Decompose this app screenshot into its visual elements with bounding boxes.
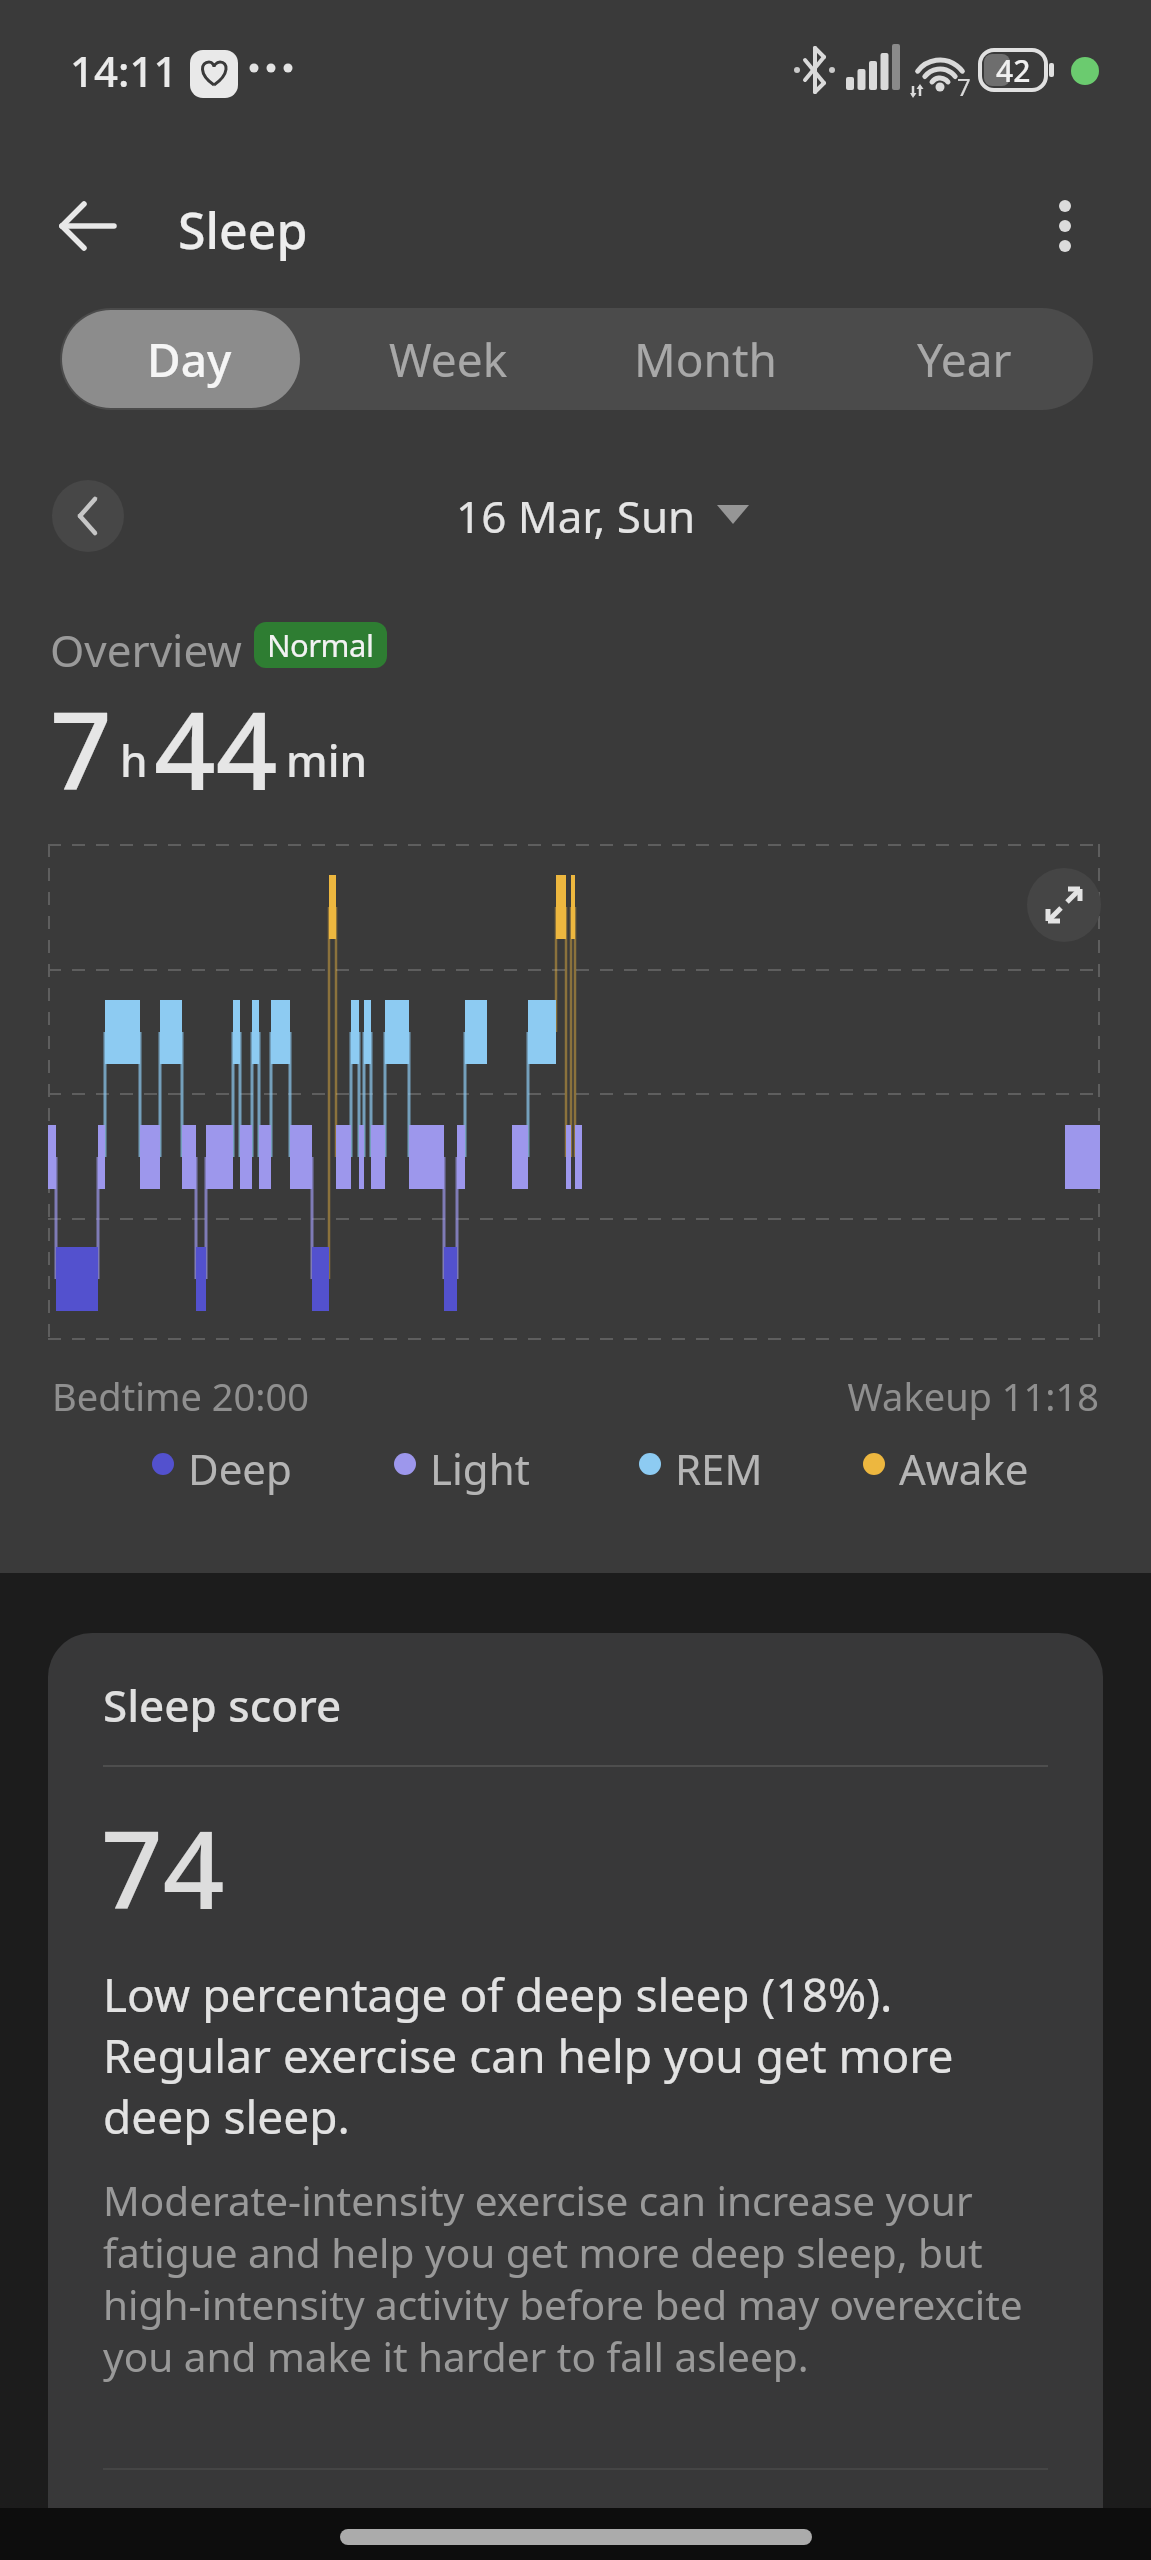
staticText: Year xyxy=(917,328,1012,391)
staticText: 42 xyxy=(996,50,1031,91)
button[interactable]: Week xyxy=(319,308,577,410)
staticText: Week xyxy=(389,328,508,391)
staticText: min xyxy=(286,730,368,790)
staticText: Overview xyxy=(50,620,242,680)
button[interactable]: 16 Mar, Sun xyxy=(0,486,1151,546)
staticText: Month xyxy=(634,328,778,391)
staticText: 44 xyxy=(154,675,278,800)
staticText: Light xyxy=(430,1440,530,1497)
staticText: 7 xyxy=(50,675,112,800)
staticText: Day xyxy=(147,328,232,391)
staticText: h xyxy=(120,730,148,790)
button[interactable]: Month xyxy=(577,308,835,410)
staticText: Low percentage of deep sleep (18%). Regu… xyxy=(103,1963,1103,2147)
staticText: Wakeup 11:18 xyxy=(0,1370,1099,1422)
button[interactable] xyxy=(52,480,124,552)
button[interactable] xyxy=(1027,868,1101,942)
staticText: REM xyxy=(675,1440,763,1497)
staticText: 16 Mar, Sun xyxy=(456,486,696,546)
staticText: Awake xyxy=(899,1440,1029,1497)
staticText: Bedtime 20:00 xyxy=(52,1370,309,1422)
button[interactable]: Day xyxy=(60,308,319,410)
staticText: Deep xyxy=(188,1440,292,1497)
staticText: Normal xyxy=(267,624,374,666)
button[interactable] xyxy=(1040,190,1090,262)
staticText: 74 xyxy=(101,1794,225,1941)
staticText: Moderate-intensity exercise can increase… xyxy=(103,2173,1103,2384)
staticText: 14:11 xyxy=(70,42,178,99)
button[interactable]: Year xyxy=(835,308,1093,410)
staticText: 7 xyxy=(957,70,971,103)
staticText: Sleep score xyxy=(103,1675,342,1735)
button[interactable] xyxy=(52,192,124,260)
staticText: Sleep xyxy=(178,196,308,264)
